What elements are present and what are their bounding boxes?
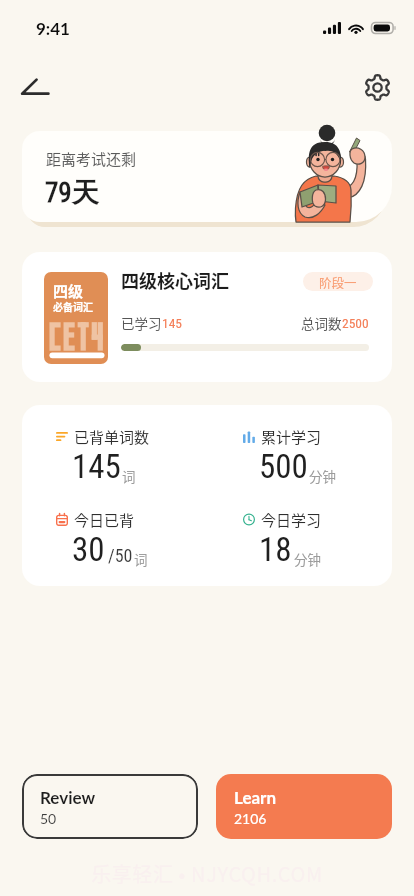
staticText: 2106: [234, 810, 267, 827]
staticText: 词: [122, 466, 136, 486]
button[interactable]: 距离考试还剩: [22, 131, 392, 222]
staticText: Review: [40, 787, 96, 807]
button[interactable]: Learn: [216, 774, 392, 839]
staticText: 30: [72, 530, 105, 569]
staticText: 必备词汇: [53, 299, 93, 313]
staticText: 阶段一: [319, 273, 357, 291]
staticText: 分钟: [294, 549, 321, 569]
staticText: 四级: [53, 280, 84, 302]
staticText: 79天: [45, 176, 99, 210]
staticText: 距离考试还剩: [46, 148, 137, 170]
button[interactable]: Back: [10, 63, 58, 111]
staticText: 四级核心词汇: [121, 267, 229, 293]
button[interactable]: 四级: [22, 252, 392, 382]
staticText: 今日已背: [74, 509, 135, 531]
staticText: Learn: [234, 787, 277, 807]
staticText: 2500: [342, 315, 369, 331]
button[interactable]: Settings: [354, 64, 400, 110]
staticText: 已背单词数: [74, 426, 150, 448]
staticText: 500: [259, 447, 308, 486]
staticText: /50: [108, 545, 133, 566]
staticText: 今日学习: [261, 509, 322, 531]
staticText: 9:41: [36, 18, 70, 38]
staticText: 145: [162, 315, 182, 331]
button[interactable]: Review: [22, 774, 198, 839]
staticText: 累计学习: [261, 426, 322, 448]
staticText: 18: [259, 530, 292, 569]
staticText: 词: [134, 549, 148, 569]
staticText: 145: [72, 447, 121, 486]
staticText: 总词数: [301, 313, 342, 333]
staticText: 已学习: [121, 313, 162, 333]
staticText: 分钟: [309, 466, 336, 486]
staticText: 50: [40, 810, 57, 827]
